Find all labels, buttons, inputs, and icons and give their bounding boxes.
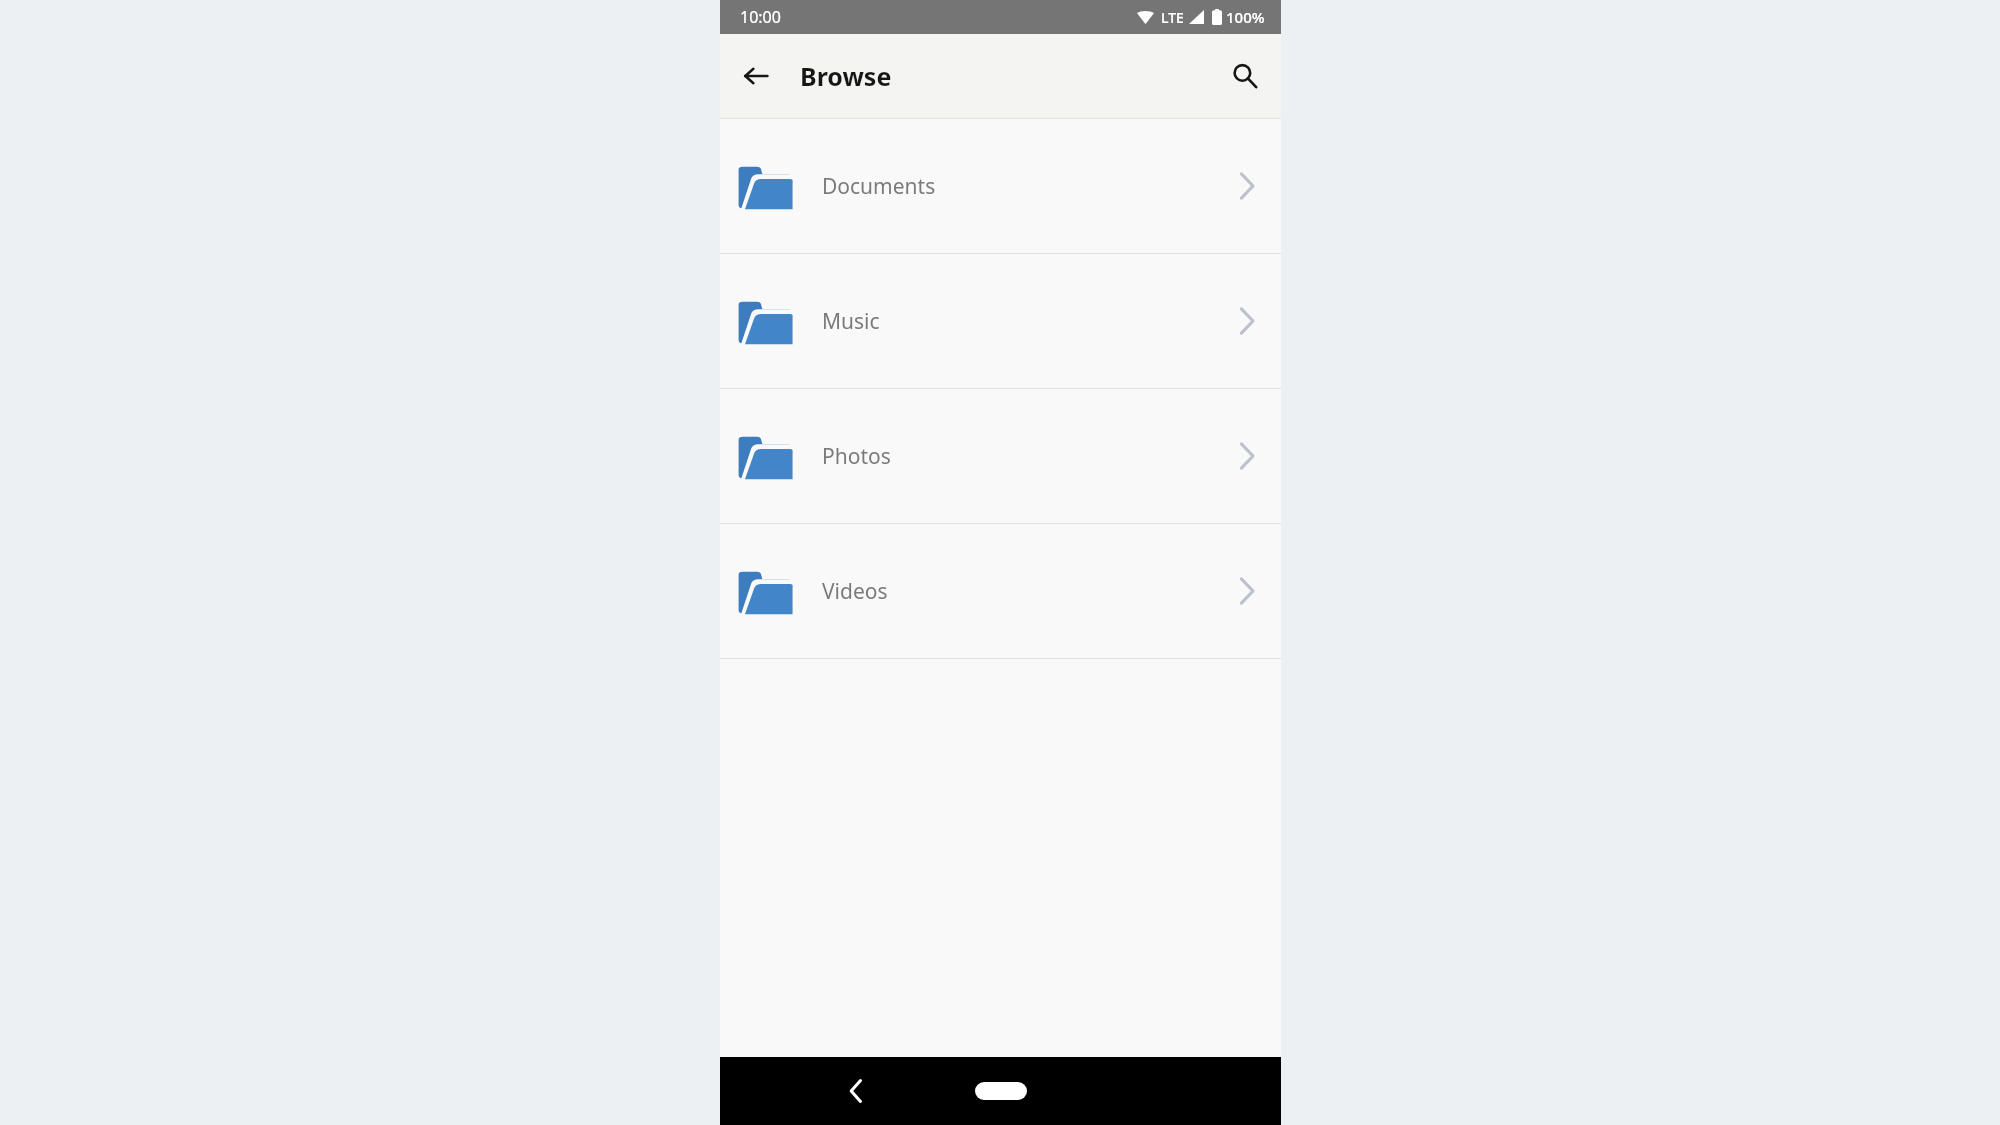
staticText: Photos xyxy=(822,442,891,471)
staticText: Music xyxy=(822,307,880,336)
button[interactable]: Back xyxy=(728,48,784,104)
staticText: LTE xyxy=(1161,8,1184,27)
staticText: 100% xyxy=(1226,7,1265,27)
button[interactable]: Back xyxy=(832,1067,880,1115)
button[interactable]: Home xyxy=(975,1082,1027,1100)
button[interactable]: Music xyxy=(720,254,1281,388)
staticText: 10:00 xyxy=(740,6,781,28)
button[interactable]: Videos xyxy=(720,524,1281,658)
staticText: Videos xyxy=(822,577,888,606)
button[interactable]: Documents xyxy=(720,119,1281,253)
staticText: Documents xyxy=(822,172,936,201)
button[interactable]: Photos xyxy=(720,389,1281,523)
button[interactable]: Search xyxy=(1217,48,1273,104)
staticText: Browse xyxy=(800,59,892,93)
